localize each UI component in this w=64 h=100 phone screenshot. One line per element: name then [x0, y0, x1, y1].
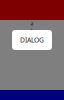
staticText: b [30, 27, 33, 34]
staticText: DIALOG [20, 36, 44, 44]
staticText: a [30, 20, 33, 27]
